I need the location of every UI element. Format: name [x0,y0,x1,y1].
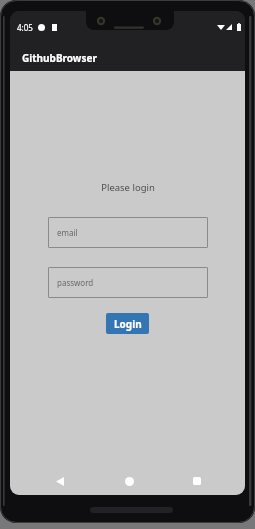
button[interactable]: Recents [183,472,211,490]
button[interactable]: email [48,217,208,248]
staticText: Please login [101,181,155,194]
button[interactable]: Back [46,472,74,490]
staticText: email [57,227,78,238]
button[interactable]: password [48,267,208,298]
button[interactable]: Home [115,472,143,490]
staticText: 4:05 [17,22,33,33]
staticText: Login [114,317,142,331]
button[interactable]: Login [106,313,149,334]
staticText: GithubBrowser [22,51,97,65]
staticText: password [57,277,94,288]
